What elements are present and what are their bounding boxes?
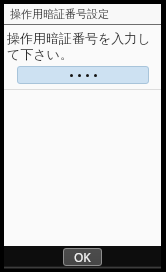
button[interactable] [17, 66, 149, 84]
button[interactable]: 操作用暗証番号設定 [4, 4, 161, 24]
staticText: 操作用暗証番号を入力して下さい。 [7, 30, 160, 63]
staticText: OK [74, 249, 91, 265]
staticText: 操作用暗証番号設定 [10, 7, 109, 21]
button[interactable]: OK [63, 248, 102, 266]
